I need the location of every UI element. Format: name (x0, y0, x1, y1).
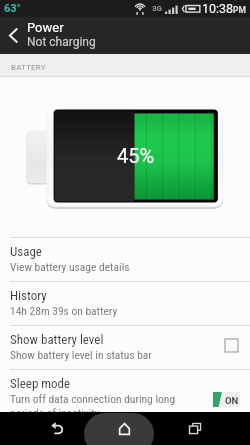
staticText: Show battery level (10, 332, 104, 347)
staticText: 3G (152, 4, 163, 13)
button[interactable]: Recent apps (172, 412, 217, 445)
staticText: 14h 28m 39s on battery (10, 304, 118, 317)
button[interactable]: Show battery level (0, 326, 250, 369)
staticText: Show battery level in status bar (10, 348, 152, 361)
staticText: 45% (117, 144, 155, 167)
button[interactable]: Navigate up (0, 17, 27, 54)
staticText: ON (225, 395, 239, 406)
button[interactable]: Home (102, 412, 147, 445)
button[interactable]: Sleep mode (0, 370, 250, 413)
staticText: BATTERY (11, 63, 46, 72)
button[interactable]: Show battery level (225, 339, 238, 352)
staticText: Not charging (27, 35, 96, 49)
staticText: 63° (4, 2, 21, 15)
staticText: PM (233, 5, 246, 15)
button[interactable]: History (0, 282, 250, 325)
staticText: History (10, 288, 47, 303)
staticText: Power (27, 20, 64, 35)
button[interactable]: Sleep mode toggle, on (213, 392, 240, 407)
staticText: periods of inactivity (10, 406, 100, 419)
staticText: Usage (10, 244, 42, 259)
staticText: Turn off data connection during long (10, 392, 176, 405)
staticText: Sleep mode (10, 376, 71, 391)
staticText: View battery usage details (10, 260, 130, 273)
staticText: 10:38 (202, 1, 234, 16)
button[interactable]: Usage (0, 238, 250, 281)
button[interactable]: Back (34, 412, 79, 445)
